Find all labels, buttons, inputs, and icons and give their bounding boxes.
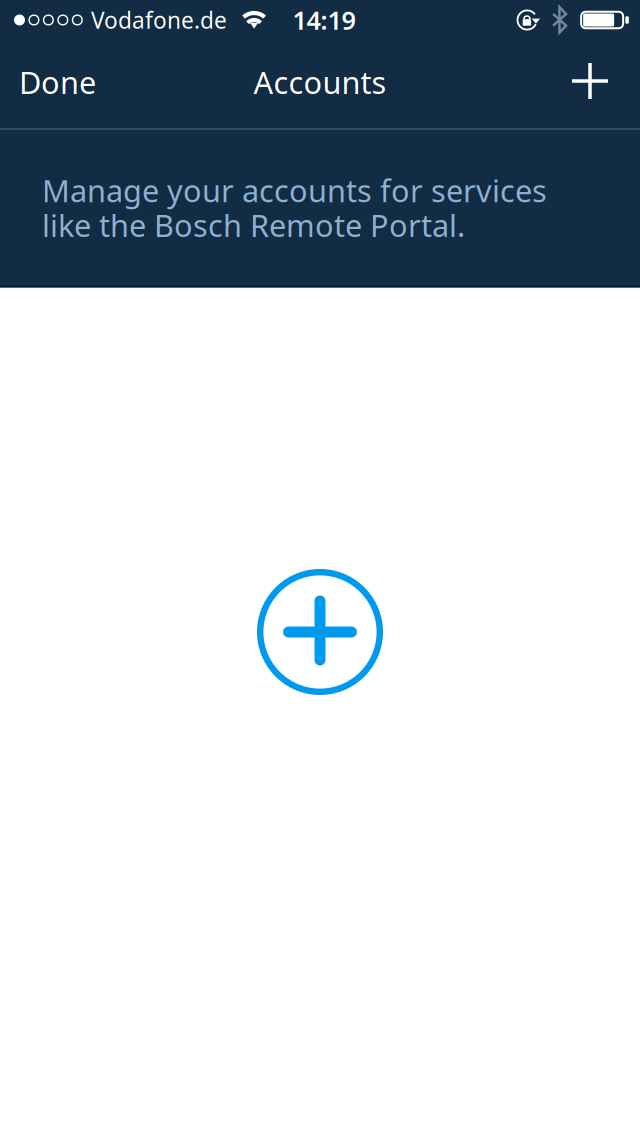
staticText: Done bbox=[19, 62, 96, 102]
button[interactable]: Add account bbox=[257, 569, 383, 695]
button[interactable]: Done bbox=[0, 40, 115, 128]
staticText: Manage your accounts for services like t… bbox=[42, 170, 547, 245]
staticText: 14:19 bbox=[292, 3, 355, 37]
button[interactable]: Add account bbox=[552, 40, 640, 128]
staticText: Accounts bbox=[253, 62, 386, 102]
staticText: Vodafone.de bbox=[91, 5, 227, 35]
